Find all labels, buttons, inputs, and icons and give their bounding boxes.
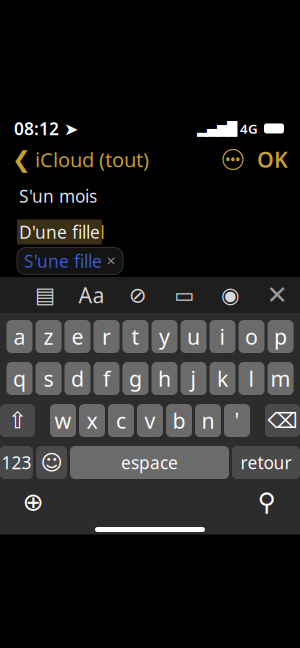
staticText: t [131,322,139,351]
staticText: ◉ [221,283,240,307]
staticText: ▂▄▆█ 4G [197,120,258,137]
button[interactable]: a [6,320,32,353]
staticText: D'une fille [19,220,100,243]
staticText: 08:12 ➤ [14,117,79,140]
staticText: n [201,406,214,435]
button[interactable]: Delete [265,404,300,437]
button[interactable]: x [79,404,105,437]
button[interactable]: i [209,320,235,353]
staticText: OK [257,145,288,174]
staticText: w [54,406,71,435]
button[interactable]: p [267,320,293,353]
button[interactable]: e [64,320,90,353]
button[interactable]: Markup [216,280,246,310]
button[interactable]: d [64,362,90,395]
button[interactable]: Shift [0,404,35,437]
staticText: ☺ [40,450,62,475]
button[interactable]: OK [243,139,288,180]
button[interactable]: b [166,404,192,437]
button[interactable]: h [151,362,177,395]
button[interactable]: g [122,362,148,395]
button[interactable]: More options [223,149,243,169]
button[interactable]: v [137,404,163,437]
staticText: Aa [78,281,104,309]
button[interactable]: m [267,362,293,395]
button[interactable]: Checklist [123,280,153,310]
staticText: e [71,322,83,351]
button[interactable]: S'une fille [17,247,123,274]
staticText: ••• [225,151,240,167]
staticText: s [43,364,53,393]
button[interactable]: n [195,404,221,437]
staticText: ▤ [35,283,55,307]
button[interactable]: z [35,320,61,353]
button[interactable]: u [180,320,206,353]
staticText: ⇧ [8,408,27,433]
staticText: l [248,364,254,393]
button[interactable]: Change keyboard language [16,485,50,519]
staticText: c [116,406,126,435]
staticText: j [190,364,196,393]
button[interactable]: c [108,404,134,437]
staticText: ❮ [12,147,31,172]
staticText: S'un mois [19,184,97,207]
button[interactable]: s [35,362,61,395]
button[interactable]: w [50,404,76,437]
button[interactable]: Dismiss keyboard [262,280,292,310]
button[interactable]: j [180,362,206,395]
staticText: ✕ [106,254,116,268]
staticText: h [158,364,171,393]
staticText: ' [234,406,239,435]
staticText: i [219,322,225,351]
button[interactable]: 123 [0,446,33,479]
button[interactable]: ❮ [12,140,149,179]
button[interactable]: r [93,320,119,353]
staticText: retour [240,451,291,474]
button[interactable]: ' [224,404,250,437]
staticText: q [13,364,26,393]
staticText: S'une fille [24,249,102,272]
staticText: ✕ [266,281,287,309]
button[interactable]: k [209,362,235,395]
button[interactable]: y [151,320,177,353]
staticText: m [270,364,290,393]
button[interactable]: retour [232,446,300,479]
button[interactable]: Dictation [250,485,284,519]
staticText: ▭ [174,283,194,307]
button[interactable]: f [93,362,119,395]
button[interactable]: espace [70,446,229,479]
button[interactable]: Table [30,280,60,310]
staticText: u [187,322,200,351]
staticText: espace [121,451,178,474]
button[interactable]: Emoji [36,446,67,479]
staticText: k [217,364,228,393]
button[interactable]: Camera [169,280,199,310]
staticText: ⊕ [22,488,43,516]
staticText: iCloud (tout) [35,146,149,173]
button[interactable]: Text format [76,280,106,310]
button[interactable]: o [238,320,264,353]
staticText: d [71,364,84,393]
staticText: f [103,364,110,393]
staticText: v [144,406,155,435]
staticText: z [43,322,53,351]
staticText: a [13,322,25,351]
staticText: p [274,322,287,351]
staticText: y [159,322,170,351]
staticText: ⚲ [257,488,276,516]
button[interactable]: t [122,320,148,353]
staticText: r [102,322,111,351]
staticText: g [129,364,142,393]
staticText: 123 [1,451,31,474]
staticText: b [172,406,185,435]
button[interactable]: q [6,362,32,395]
staticText: ⌫ [267,408,297,433]
staticText: o [245,322,258,351]
button[interactable]: l [238,362,264,395]
staticText: x [86,406,97,435]
staticText: ⊘ [129,283,147,307]
